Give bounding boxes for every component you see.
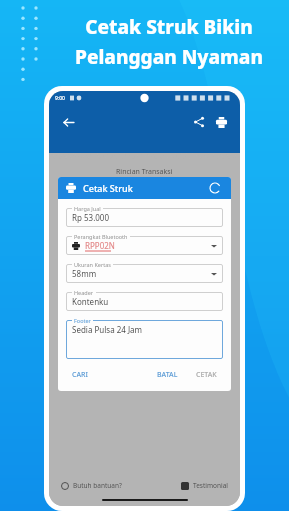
button[interactable]: Print <box>210 111 232 133</box>
staticText: Cetak Struk Bikin <box>85 14 253 40</box>
staticText: CETAK <box>196 370 217 380</box>
staticText: 9:00 <box>55 95 65 102</box>
staticText: Cetak Struk <box>83 182 133 194</box>
staticText: RPP02N <box>85 240 115 251</box>
button[interactable]: RPP02N <box>66 233 223 255</box>
button[interactable]: Testimonial <box>181 481 228 490</box>
button[interactable]: CARI <box>66 367 94 383</box>
button[interactable]: Share <box>188 111 210 133</box>
button[interactable]: Rp 53.000 <box>66 205 223 227</box>
staticText: Rp 53.000 <box>72 212 109 223</box>
staticText: Rincian Transaksi <box>116 167 173 177</box>
staticText: Harga Jual <box>74 205 101 212</box>
staticText: Footer <box>74 317 91 324</box>
staticText: Testimonial <box>193 481 228 490</box>
button[interactable]: Butuh bantuan? <box>61 481 122 490</box>
button[interactable]: Back <box>57 111 79 133</box>
button[interactable]: CETAK <box>190 367 223 383</box>
staticText: Perangkat Bluetooth <box>74 233 128 240</box>
staticText: BATAL <box>157 370 178 380</box>
staticText: 58mm <box>72 268 97 279</box>
staticText: Pelanggan Nyaman <box>75 44 263 70</box>
staticText: Butuh bantuan? <box>73 481 122 490</box>
button[interactable]: Kontenku <box>66 289 223 311</box>
button[interactable]: BATAL <box>151 367 184 383</box>
button[interactable]: Refresh <box>207 180 223 196</box>
staticText: Sedia Pulsa 24 Jam <box>72 324 143 335</box>
staticText: CARI <box>72 370 88 380</box>
button[interactable]: Sedia Pulsa 24 Jam <box>66 317 223 359</box>
button[interactable]: Cetak Struk <box>58 177 231 199</box>
staticText: Ukuran Kertas <box>74 261 111 268</box>
button[interactable]: 58mm <box>66 261 223 283</box>
staticText: Kontenku <box>72 296 109 307</box>
staticText: Header <box>74 289 94 296</box>
